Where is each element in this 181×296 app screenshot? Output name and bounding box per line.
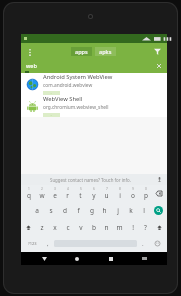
button[interactable]: Back [34,252,54,265]
button[interactable]: m [113,219,126,236]
button[interactable]: 5 [74,185,87,202]
button[interactable]: 3 [48,185,61,202]
button[interactable]: v [74,219,87,236]
button[interactable]: WebView Shell [21,95,167,117]
button[interactable]: x [48,219,61,236]
button[interactable]: g [85,202,98,219]
staticText: t [79,191,82,200]
staticText: u [104,191,109,200]
button[interactable]: Filter [152,46,163,57]
button[interactable]: Shift [22,219,35,236]
staticText: w [39,191,45,200]
staticText: d [63,206,67,215]
staticText: a [35,206,39,215]
button[interactable]: a [30,202,44,219]
button[interactable]: apps [71,47,92,56]
staticText: . [142,240,144,248]
staticText: q [27,191,31,200]
staticText: x [53,223,57,232]
staticText: j [117,206,119,215]
staticText: 4 [67,187,69,191]
staticText: 0 [145,187,147,191]
staticText: y [92,191,96,200]
staticText: Android System WebView [43,73,113,81]
button[interactable]: Period [137,236,149,251]
staticText: m [116,223,123,232]
staticText: g [90,206,94,215]
staticText: k [129,206,133,215]
button[interactable]: b [87,219,100,236]
button[interactable]: s [44,202,58,219]
staticText: 6 [93,187,95,191]
staticText: system [45,92,58,94]
button[interactable]: 9 [126,185,139,202]
staticText: ? [144,223,147,232]
button[interactable]: Recent apps [101,252,121,265]
button[interactable]: Voice input [156,176,163,183]
staticText: ! [132,223,134,232]
staticText: web [26,62,37,69]
button[interactable]: Search [151,202,166,219]
staticText: b [92,223,96,232]
staticText: ?123 [28,241,37,246]
staticText: org.chromium.webview_shell [43,104,109,111]
button[interactable]: f [72,202,85,219]
staticText: WebView Shell [43,95,83,103]
button[interactable]: c [61,219,74,236]
button[interactable]: Android System WebView [21,73,167,95]
button[interactable]: Emoji [149,236,166,251]
staticText: system [45,114,58,116]
staticText: 5 [80,187,82,191]
staticText: l [143,206,145,215]
staticText: z [40,223,44,232]
button[interactable]: 1 [22,185,35,202]
staticText: v [79,223,83,232]
button[interactable]: h [98,202,111,219]
button[interactable]: k [124,202,137,219]
staticText: e [53,191,57,200]
staticText: 1 [28,187,30,191]
staticText: o [131,191,135,200]
button[interactable]: z [35,219,48,236]
button[interactable]: Home [67,252,87,265]
staticText: r [66,191,69,200]
button[interactable]: ? [139,219,152,236]
button[interactable]: 2 [35,185,48,202]
button[interactable]: n [100,219,113,236]
staticText: com.android.webview [43,82,93,89]
button[interactable]: Menu [25,47,35,57]
staticText: 7 [106,187,108,191]
staticText: apks [99,48,112,55]
staticText: s [49,206,53,215]
button[interactable]: 0 [139,185,152,202]
button[interactable]: Backspace [152,185,166,202]
staticText: apps [75,48,88,55]
button[interactable]: ?123 [22,236,42,251]
button[interactable]: Shift [152,219,166,236]
button[interactable]: ! [126,219,139,236]
staticText: , [47,240,49,248]
button[interactable]: 8 [113,185,126,202]
button[interactable]: l [137,202,150,219]
staticText: Suggest contact names? Touch for info. [50,177,131,183]
button[interactable]: d [58,202,72,219]
button[interactable]: Comma [42,236,54,251]
button[interactable]: 7 [100,185,113,202]
button[interactable]: 6 [87,185,100,202]
staticText: p [144,191,148,200]
staticText: c [66,223,70,232]
staticText: 3 [54,187,56,191]
staticText: 2 [41,187,43,191]
button[interactable]: Switch keyboard [134,252,154,265]
staticText: 9 [132,187,134,191]
staticText: n [104,223,109,232]
button[interactable]: web [21,60,167,71]
staticText: h [102,206,107,215]
staticText: i [119,191,121,200]
button[interactable]: j [111,202,124,219]
staticText: f [77,206,80,215]
button[interactable]: 4 [61,185,74,202]
button[interactable]: apks [95,47,116,56]
button[interactable]: Clear [155,62,162,69]
